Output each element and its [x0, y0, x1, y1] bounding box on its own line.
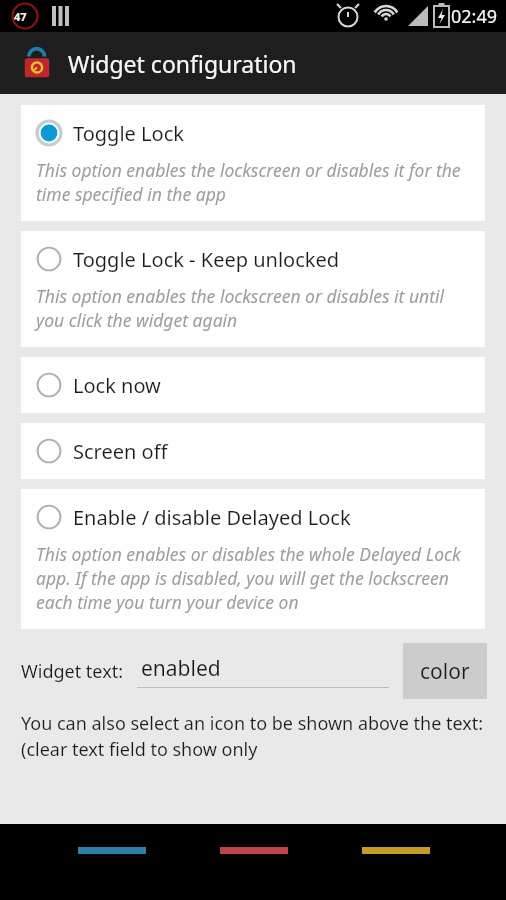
button[interactable]: color: [403, 643, 487, 699]
button[interactable]: Enable / disable Delayed Lock: [21, 489, 485, 629]
staticText: enabled: [141, 654, 221, 683]
button[interactable]: Screen off: [21, 423, 485, 479]
button[interactable]: Toggle Lock: [21, 105, 485, 221]
staticText: 47: [14, 9, 27, 24]
staticText: Toggle Lock - Keep unlocked: [73, 246, 340, 273]
staticText: 02:49: [451, 4, 498, 29]
staticText: Enable / disable Delayed Lock: [73, 504, 351, 531]
staticText: This option enables the lockscreen or di…: [36, 284, 469, 332]
button[interactable]: Lock now: [21, 357, 485, 413]
staticText: This option enables the lockscreen or di…: [36, 158, 469, 206]
staticText: color: [420, 657, 470, 686]
staticText: Lock now: [73, 372, 161, 399]
staticText: This option enables or disables the whol…: [36, 542, 469, 614]
button[interactable]: Toggle Lock - Keep unlocked: [21, 231, 485, 347]
staticText: Toggle Lock: [73, 120, 184, 147]
staticText: Widget text:: [21, 659, 123, 684]
staticText: You can also select an icon to be shown …: [21, 711, 496, 761]
staticText: Widget configuration: [68, 48, 297, 79]
staticText: Screen off: [73, 438, 168, 465]
button[interactable]: enabled: [137, 654, 389, 688]
